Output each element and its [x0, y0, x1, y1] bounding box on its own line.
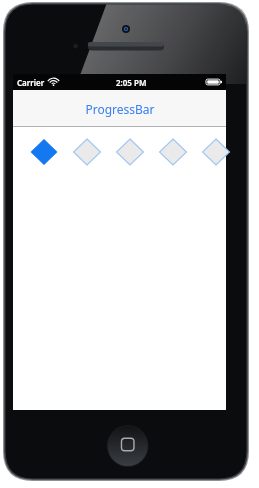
staticText: Carrier — [17, 77, 45, 88]
staticText: ProgressBar — [85, 101, 155, 117]
staticText: 2:05 PM — [116, 77, 147, 88]
button[interactable]: Progress indicator, step 1 of 5 — [13, 127, 226, 410]
